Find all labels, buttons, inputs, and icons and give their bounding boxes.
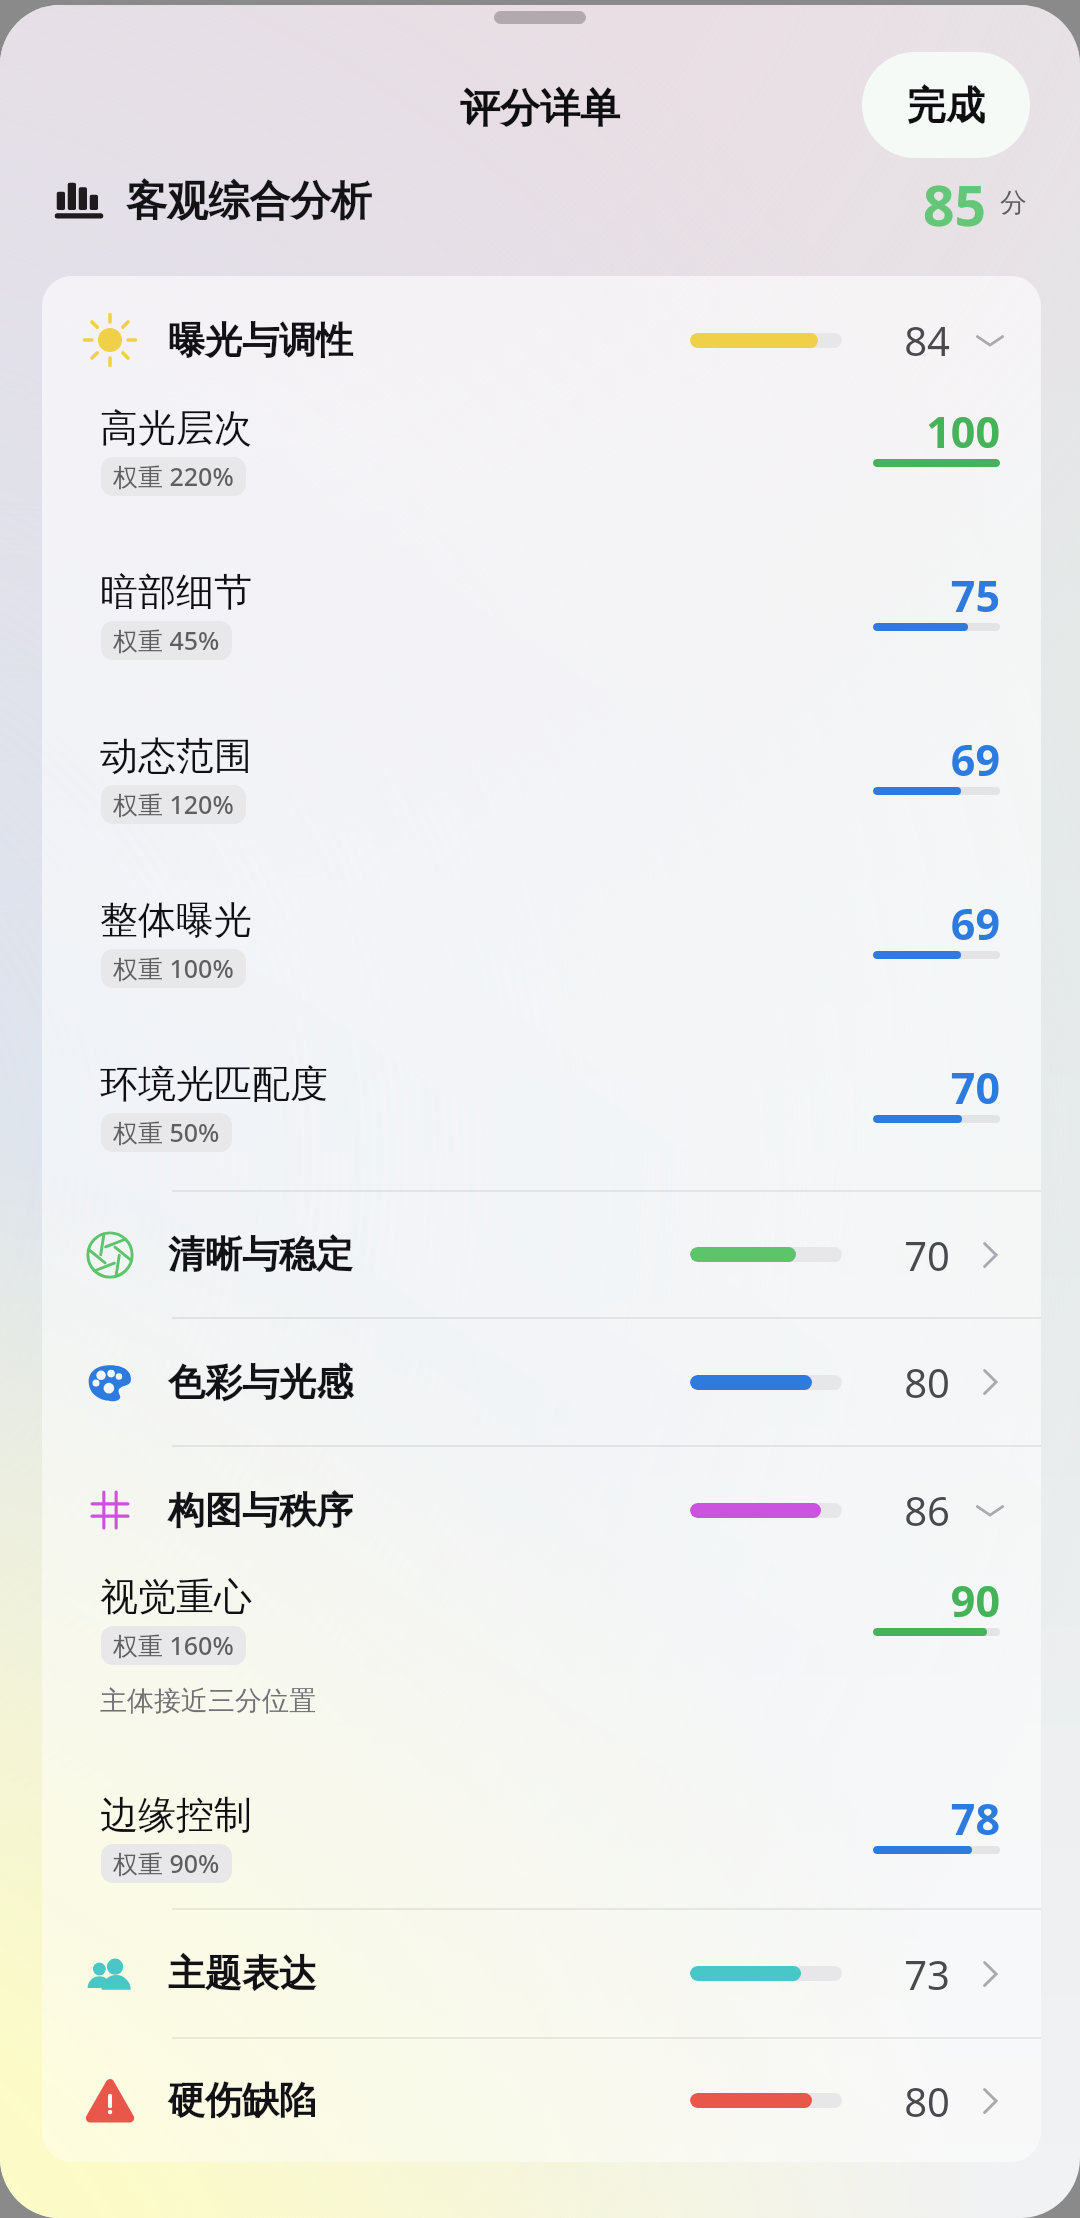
staticText: 完成	[907, 81, 985, 130]
staticText: 高光层次	[100, 404, 252, 452]
staticText: 分	[1000, 186, 1027, 220]
staticText: 70	[840, 1058, 1000, 1117]
button[interactable]: 暗部细节	[42, 568, 1041, 732]
button[interactable]: 硬伤缺陷	[42, 2039, 1041, 2162]
staticText: 清晰与稳定	[168, 1231, 353, 1278]
staticText: 权重 120%	[113, 787, 234, 821]
staticText: 78	[840, 1789, 1000, 1848]
button[interactable]: 视觉重心	[42, 1573, 1041, 1791]
staticText: 86	[870, 1483, 950, 1537]
staticText: 视觉重心	[100, 1573, 252, 1621]
staticText: 85	[923, 167, 986, 237]
button[interactable]: 高光层次	[42, 404, 1041, 568]
staticText: 69	[840, 730, 1000, 789]
staticText: 曝光与调性	[168, 317, 353, 364]
staticText: 构图与秩序	[168, 1487, 353, 1534]
staticText: 权重 50%	[113, 1115, 220, 1149]
staticText: 80	[870, 2074, 950, 2128]
staticText: 客观综合分析	[126, 176, 372, 228]
button[interactable]: 环境光匹配度	[42, 1060, 1041, 1190]
staticText: 主题表达	[168, 1950, 316, 1997]
staticText: 动态范围	[100, 732, 252, 780]
button[interactable]: 色彩与光感	[42, 1319, 1041, 1445]
staticText: 100	[840, 402, 1000, 461]
other: Collapse	[973, 323, 1007, 357]
staticText: 评分详单	[460, 83, 620, 133]
other: Expand	[973, 2084, 1007, 2118]
staticText: 暗部细节	[100, 568, 252, 616]
staticText: 70	[870, 1228, 950, 1282]
staticText: 73	[870, 1947, 950, 2001]
button[interactable]: 构图与秩序	[42, 1447, 1041, 1573]
button[interactable]: 清晰与稳定	[42, 1192, 1041, 1317]
staticText: 84	[870, 313, 950, 367]
other: Expand	[973, 1957, 1007, 1991]
staticText: 80	[870, 1355, 950, 1409]
button[interactable]: 整体曝光	[42, 896, 1041, 1060]
staticText: 权重 100%	[113, 951, 234, 985]
staticText: 69	[840, 894, 1000, 953]
other: Collapse	[973, 1493, 1007, 1527]
other: Expand	[973, 1365, 1007, 1399]
staticText: 色彩与光感	[168, 1359, 353, 1406]
button[interactable]: 边缘控制	[42, 1791, 1041, 1908]
staticText: 权重 220%	[113, 459, 234, 493]
staticText: 整体曝光	[100, 896, 252, 944]
button[interactable]: 动态范围	[42, 732, 1041, 896]
staticText: 权重 160%	[113, 1628, 234, 1662]
staticText: 90	[840, 1571, 1000, 1630]
staticText: 75	[840, 566, 1000, 625]
other: Expand	[973, 1238, 1007, 1272]
staticText: 权重 90%	[113, 1846, 220, 1880]
staticText: 权重 45%	[113, 623, 220, 657]
button[interactable]: 完成	[862, 52, 1030, 158]
staticText: 主体接近三分位置	[100, 1684, 316, 1718]
staticText: 硬伤缺陷	[168, 2077, 316, 2124]
button[interactable]: 曝光与调性	[42, 276, 1041, 404]
staticText: 环境光匹配度	[100, 1060, 328, 1108]
button[interactable]: 主题表达	[42, 1910, 1041, 2037]
staticText: 边缘控制	[100, 1791, 252, 1839]
